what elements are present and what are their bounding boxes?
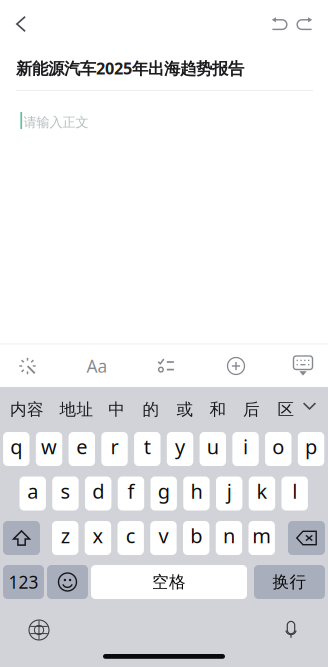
staticText: r bbox=[110, 433, 118, 460]
button[interactable]: k bbox=[249, 476, 275, 510]
staticText: k bbox=[256, 477, 267, 505]
button[interactable]: p bbox=[298, 432, 324, 466]
staticText: f bbox=[127, 477, 134, 505]
staticText: t bbox=[144, 433, 151, 460]
button[interactable]: 区 bbox=[274, 392, 297, 426]
staticText: g bbox=[158, 477, 170, 505]
button[interactable]: Emoji bbox=[47, 565, 88, 599]
staticText: 新能源汽车2025年出海趋势报告 bbox=[16, 57, 244, 79]
staticText: 后 bbox=[243, 399, 260, 420]
staticText: 123 bbox=[8, 570, 38, 594]
staticText: d bbox=[92, 477, 104, 505]
staticText: m bbox=[252, 522, 271, 549]
staticText: v bbox=[158, 522, 168, 549]
button[interactable]: a bbox=[19, 476, 46, 510]
staticText: 请输入正文 bbox=[23, 114, 88, 131]
staticText: s bbox=[60, 477, 70, 505]
button[interactable]: t bbox=[134, 432, 160, 466]
button[interactable]: r bbox=[101, 432, 128, 466]
button[interactable]: q bbox=[3, 432, 29, 466]
button[interactable]: 地址 bbox=[56, 392, 96, 426]
button[interactable]: m bbox=[248, 521, 275, 555]
staticText: z bbox=[61, 522, 70, 549]
staticText: 换行 bbox=[272, 572, 306, 592]
button[interactable]: e bbox=[69, 432, 95, 466]
staticText: q bbox=[10, 433, 22, 460]
button[interactable]: Text format bbox=[75, 345, 119, 387]
staticText: 地址 bbox=[59, 399, 93, 420]
button[interactable]: More candidates bbox=[297, 389, 321, 423]
button[interactable]: Redo bbox=[288, 7, 322, 41]
staticText: i bbox=[243, 433, 248, 460]
staticText: 内容 bbox=[10, 399, 44, 420]
staticText: h bbox=[190, 477, 202, 505]
button[interactable]: Return bbox=[254, 565, 325, 599]
button[interactable]: h bbox=[183, 476, 210, 510]
staticText: l bbox=[292, 477, 297, 505]
staticText: 或 bbox=[176, 399, 193, 420]
staticText: b bbox=[190, 522, 202, 549]
button[interactable]: 的 bbox=[139, 392, 162, 426]
button[interactable]: 后 bbox=[240, 392, 263, 426]
button[interactable]: g bbox=[150, 476, 177, 510]
button[interactable]: z bbox=[52, 521, 78, 555]
button[interactable]: Back bbox=[0, 2, 43, 46]
button[interactable]: Numbers and symbols bbox=[3, 565, 44, 599]
staticText: 空格 bbox=[152, 572, 186, 592]
button[interactable]: Next keyboard bbox=[19, 613, 59, 647]
button[interactable]: s bbox=[52, 476, 79, 510]
staticText: y bbox=[175, 433, 185, 460]
button[interactable]: x bbox=[85, 521, 111, 555]
button[interactable]: Dictation bbox=[271, 613, 311, 647]
staticText: Aa bbox=[86, 354, 107, 378]
button[interactable]: o bbox=[265, 432, 291, 466]
staticText: p bbox=[305, 433, 317, 460]
button[interactable]: w bbox=[36, 432, 62, 466]
button[interactable]: Checklist bbox=[144, 345, 188, 387]
button[interactable]: d bbox=[85, 476, 111, 510]
button[interactable]: f bbox=[118, 476, 144, 510]
staticText: n bbox=[223, 522, 235, 549]
staticText: 和 bbox=[210, 399, 227, 420]
staticText: 的 bbox=[142, 399, 159, 420]
button[interactable]: Delete bbox=[288, 521, 325, 555]
button[interactable]: 内容 bbox=[7, 392, 47, 426]
button[interactable]: Undo bbox=[262, 7, 296, 41]
button[interactable]: l bbox=[281, 476, 308, 510]
staticText: u bbox=[207, 433, 219, 460]
staticText: j bbox=[227, 477, 232, 505]
button[interactable]: 中 bbox=[105, 392, 128, 426]
staticText: e bbox=[76, 433, 87, 460]
button[interactable]: y bbox=[167, 432, 193, 466]
staticText: o bbox=[272, 433, 284, 460]
staticText: 区 bbox=[277, 399, 294, 420]
staticText: w bbox=[41, 433, 57, 460]
staticText: a bbox=[27, 477, 38, 505]
button[interactable]: j bbox=[216, 476, 242, 510]
button[interactable]: n bbox=[216, 521, 242, 555]
button[interactable]: 和 bbox=[207, 392, 230, 426]
button[interactable]: v bbox=[150, 521, 177, 555]
button[interactable]: 或 bbox=[173, 392, 196, 426]
button[interactable]: Hide keyboard bbox=[281, 345, 325, 387]
button[interactable]: i bbox=[232, 432, 259, 466]
button[interactable]: c bbox=[117, 521, 144, 555]
button[interactable]: 空格 bbox=[91, 565, 247, 599]
button[interactable]: u bbox=[200, 432, 226, 466]
staticText: c bbox=[126, 522, 136, 549]
button[interactable]: Shift bbox=[3, 521, 40, 555]
staticText: 中 bbox=[108, 399, 125, 420]
button[interactable]: AI assist bbox=[5, 345, 49, 387]
staticText: x bbox=[92, 522, 103, 549]
button[interactable]: Insert bbox=[214, 345, 258, 387]
button[interactable]: b bbox=[183, 521, 209, 555]
